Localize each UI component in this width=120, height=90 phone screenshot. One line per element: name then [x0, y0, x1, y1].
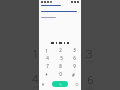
button[interactable]: 6 — [68, 55, 79, 62]
staticText: 3 — [73, 47, 76, 53]
staticText: 4 — [32, 71, 39, 86]
staticText: 6 — [87, 72, 94, 87]
button[interactable]: 5 — [55, 55, 66, 62]
staticText: 0 — [59, 71, 62, 77]
staticText: 5 — [60, 55, 63, 61]
staticText: 1 — [32, 46, 39, 61]
staticText: 1 — [45, 48, 48, 54]
button[interactable]: 2 — [55, 47, 66, 54]
staticText: 3 — [86, 46, 93, 61]
staticText: 7 — [46, 63, 49, 69]
button[interactable]: 0 — [55, 71, 66, 78]
button[interactable]: 9 — [68, 63, 79, 70]
button[interactable]: Call — [52, 81, 68, 87]
button[interactable]: 4 — [41, 55, 52, 62]
staticText: 9 — [73, 63, 76, 69]
button[interactable]: # — [68, 71, 79, 78]
button[interactable]: Video call — [41, 82, 46, 87]
button[interactable]: Backspace — [74, 82, 79, 87]
button[interactable]: 3 — [68, 47, 79, 54]
button[interactable]: * — [41, 71, 52, 78]
staticText: 4 — [46, 55, 49, 61]
staticText: 2 — [59, 47, 62, 53]
button[interactable]: 1 — [41, 47, 52, 54]
staticText: 6 — [73, 55, 76, 61]
button[interactable]: 8 — [55, 63, 66, 70]
staticText: 8 — [59, 63, 62, 69]
button[interactable]: 7 — [41, 63, 52, 70]
staticText: * — [45, 72, 48, 78]
staticText: # — [72, 72, 75, 78]
